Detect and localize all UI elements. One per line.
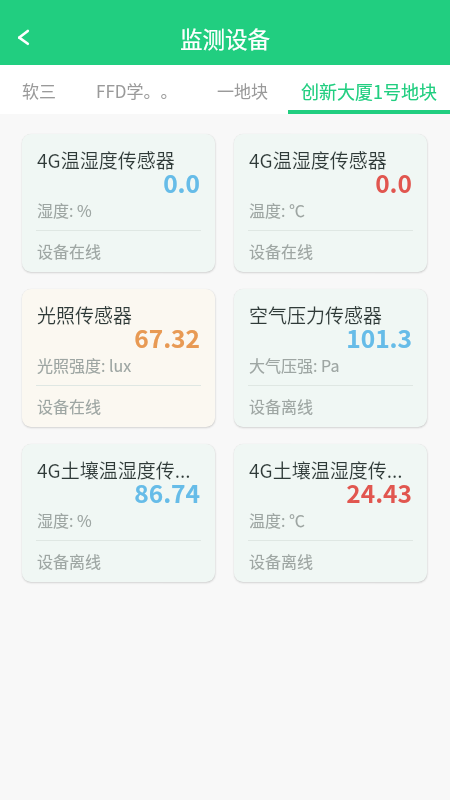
staticText: 101.3: [234, 320, 412, 355]
staticText: 光照传感器: [37, 301, 133, 329]
staticText: 创新大厦1号地块: [301, 78, 437, 104]
staticText: 湿度: %: [37, 198, 92, 221]
staticText: 4G土壤温湿度传...: [37, 456, 191, 484]
staticText: 设备离线: [249, 394, 314, 417]
staticText: FFD学。。: [96, 78, 178, 103]
staticText: 温度: ℃: [249, 198, 306, 221]
button[interactable]: 4G温湿度传感器: [234, 134, 427, 272]
staticText: 湿度: %: [37, 508, 92, 531]
button[interactable]: 4G土壤温湿度传...: [234, 444, 427, 582]
staticText: 空气压力传感器: [249, 301, 383, 329]
staticText: 4G温湿度传感器: [37, 146, 175, 174]
staticText: 大气压强: Pa: [249, 353, 340, 376]
button[interactable]: 4G温湿度传感器: [22, 134, 215, 272]
staticText: 设备离线: [37, 549, 102, 572]
staticText: 设备在线: [37, 394, 102, 417]
button[interactable]: 空气压力传感器: [234, 289, 427, 427]
staticText: 4G温湿度传感器: [249, 146, 387, 174]
button[interactable]: 光照传感器: [22, 289, 215, 427]
button[interactable]: Back: [0, 15, 46, 60]
staticText: 温度: ℃: [249, 508, 306, 531]
staticText: 0.0: [22, 165, 200, 200]
button[interactable]: 创新大厦1号地块: [288, 65, 450, 114]
staticText: 光照强度: lux: [37, 353, 132, 376]
staticText: 软三: [22, 78, 56, 103]
staticText: 4G土壤温湿度传...: [249, 456, 403, 484]
staticText: 67.32: [22, 320, 200, 355]
staticText: 设备离线: [249, 549, 314, 572]
staticText: 一地块: [217, 78, 268, 103]
button[interactable]: 4G土壤温湿度传...: [22, 444, 215, 582]
staticText: 设备在线: [249, 239, 314, 262]
staticText: 0.0: [234, 165, 412, 200]
staticText: 设备在线: [37, 239, 102, 262]
staticText: 86.74: [22, 475, 200, 510]
staticText: 监测设备: [180, 22, 271, 55]
button[interactable]: 软三: [0, 65, 77, 114]
button[interactable]: 一地块: [196, 65, 288, 114]
staticText: 24.43: [234, 475, 412, 510]
button[interactable]: FFD学。。: [77, 65, 196, 114]
